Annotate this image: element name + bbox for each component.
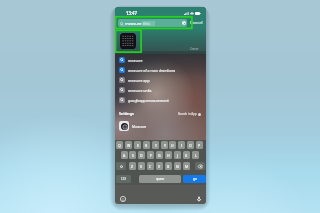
staticText: X	[140, 164, 143, 169]
staticText: this	[142, 21, 150, 26]
staticText: Search in App	[178, 112, 197, 116]
staticText: Settings	[119, 111, 134, 116]
button[interactable]: D	[138, 151, 145, 159]
button[interactable]: E	[134, 141, 141, 149]
button[interactable]: 123	[116, 175, 131, 183]
staticText: Corner	[190, 47, 199, 51]
button[interactable]: O	[187, 141, 194, 149]
staticText: D	[140, 153, 143, 158]
staticText: L	[195, 153, 197, 158]
staticText: B	[167, 164, 170, 169]
staticText: T	[155, 143, 157, 148]
staticText: O	[189, 143, 192, 148]
staticText: H	[167, 153, 170, 158]
button[interactable]: googleappmeasurement	[115, 95, 206, 105]
button[interactable]: S	[129, 151, 136, 159]
button[interactable]: Z	[129, 162, 136, 170]
button[interactable]: Delete	[195, 162, 205, 170]
staticText: measure units	[128, 88, 152, 93]
button[interactable]: P	[196, 141, 203, 149]
button[interactable]: X	[138, 162, 145, 170]
staticText: 123	[121, 177, 126, 181]
button[interactable]: measure	[118, 19, 187, 27]
button[interactable]: T	[152, 141, 159, 149]
staticText: Cancel	[190, 20, 203, 25]
button[interactable]: W	[125, 141, 132, 149]
staticText: measure app	[128, 78, 150, 83]
button[interactable]: U	[169, 141, 176, 149]
button[interactable]: measure	[115, 55, 206, 65]
staticText: Measure	[132, 124, 147, 129]
button[interactable]: J	[174, 151, 181, 159]
button[interactable]: Emoji keyboard	[120, 196, 126, 202]
staticText: S	[132, 153, 134, 158]
staticText: W	[127, 143, 131, 148]
staticText: go	[193, 177, 197, 181]
staticText: I	[181, 143, 183, 148]
button[interactable]: V	[156, 162, 163, 170]
button[interactable]: C	[147, 162, 154, 170]
staticText: U	[171, 143, 174, 148]
staticText: N	[176, 164, 179, 169]
button[interactable]: F	[147, 151, 154, 159]
button[interactable]: N	[174, 162, 181, 170]
staticText: A	[123, 153, 126, 158]
staticText: Z	[131, 164, 134, 169]
button[interactable]: K	[183, 151, 190, 159]
button[interactable]: Search in App	[177, 111, 202, 117]
button[interactable]: space	[139, 175, 181, 183]
staticText: measure	[125, 21, 142, 26]
button[interactable]: Shift	[116, 162, 126, 170]
button[interactable]: A	[121, 151, 128, 159]
staticText: Y	[164, 143, 166, 148]
button[interactable]: B	[165, 162, 172, 170]
staticText: J	[177, 153, 178, 158]
button[interactable]: Measure	[115, 119, 206, 133]
staticText: K	[185, 153, 188, 158]
button[interactable]: I	[178, 141, 185, 149]
staticText: space	[156, 177, 165, 181]
staticText: E	[137, 143, 139, 148]
button[interactable]: measure app	[115, 75, 206, 85]
button[interactable]: Measure	[120, 33, 136, 51]
button[interactable]: M	[183, 162, 190, 170]
staticText: V	[158, 164, 161, 169]
button[interactable]: Cancel	[189, 19, 204, 26]
button[interactable]: measure units	[115, 85, 206, 95]
staticText: G	[158, 153, 161, 158]
button[interactable]: G	[156, 151, 163, 159]
button[interactable]: go	[183, 175, 206, 183]
staticText: measure of a man drambora	[128, 68, 176, 73]
staticText: M	[185, 164, 189, 169]
staticText: Q	[118, 143, 121, 148]
button[interactable]: L	[192, 151, 199, 159]
staticText: googleappmeasurement	[128, 98, 169, 103]
staticText: measure	[128, 58, 143, 63]
staticText: C	[149, 164, 152, 169]
staticText: F	[150, 153, 152, 158]
button[interactable]: Q	[116, 141, 123, 149]
button[interactable]: R	[143, 141, 150, 149]
button[interactable]: H	[165, 151, 172, 159]
button[interactable]: measure of a man drambora	[115, 65, 206, 75]
staticText: R	[145, 143, 148, 148]
staticText: P	[198, 143, 201, 148]
button[interactable]: Clear text	[182, 21, 186, 25]
button[interactable]: Dictate	[196, 196, 202, 202]
button[interactable]: Y	[161, 141, 168, 149]
staticText: 13:47	[126, 10, 138, 16]
